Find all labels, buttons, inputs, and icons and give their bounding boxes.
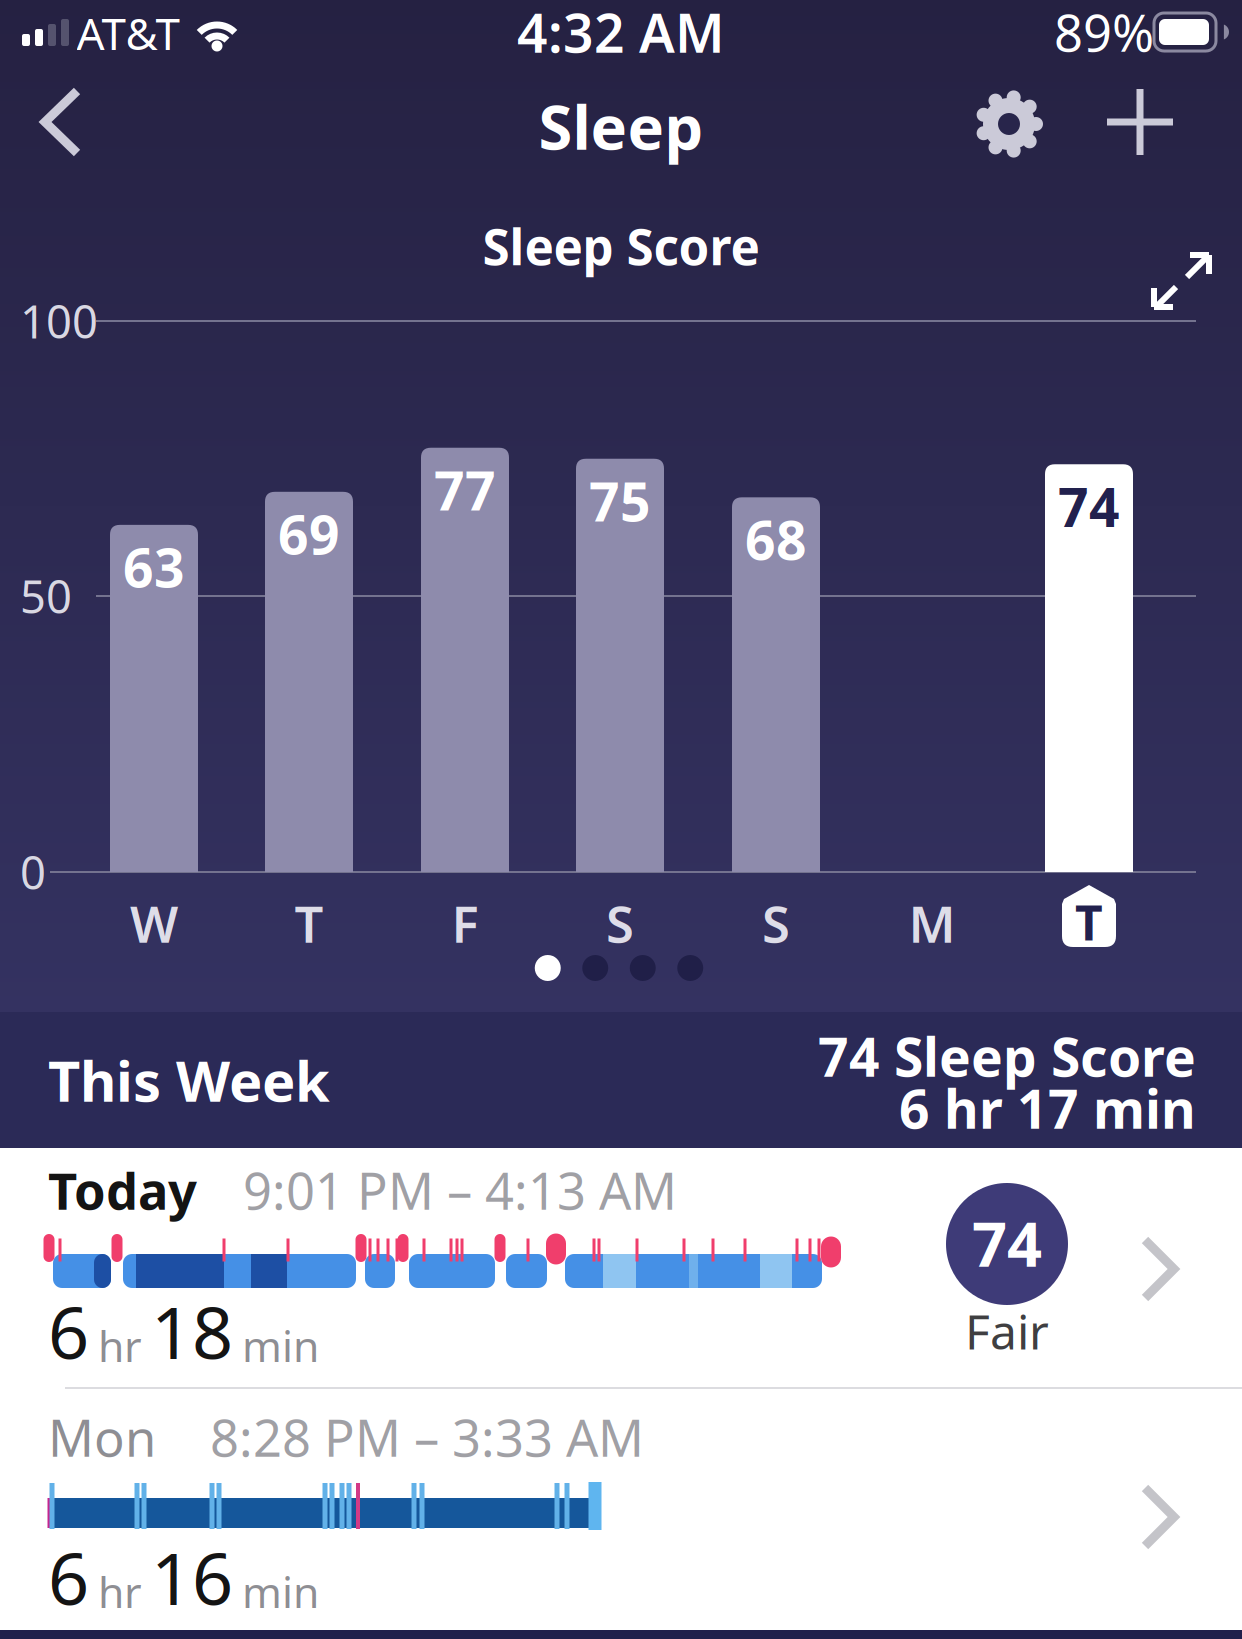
staticText: 63 <box>123 531 185 602</box>
staticText: 68 <box>745 504 807 575</box>
staticText: Mon <box>48 1403 156 1471</box>
staticText: T <box>1075 890 1103 954</box>
staticText: 69 <box>278 498 340 569</box>
staticText: 74 <box>1058 471 1120 542</box>
staticText: W <box>130 889 178 957</box>
staticText: hr <box>98 1317 142 1374</box>
button[interactable] <box>36 82 86 162</box>
staticText: 4:32 AM <box>517 0 725 67</box>
staticText: 6 <box>48 1283 89 1379</box>
staticText: Sleep <box>538 85 703 167</box>
staticText: This Week <box>48 1043 330 1117</box>
staticText: 0 <box>20 842 46 902</box>
staticText: Today <box>48 1156 197 1224</box>
staticText: 74 Sleep Score <box>818 1021 1196 1091</box>
staticText: M <box>908 889 955 957</box>
staticText: S <box>762 889 790 957</box>
staticText: 18 <box>151 1283 233 1379</box>
staticText: S <box>606 889 634 957</box>
staticText: Sleep Score <box>482 213 759 279</box>
staticText: 16 <box>151 1529 233 1625</box>
staticText: 50 <box>20 566 72 626</box>
staticText: 77 <box>434 454 496 525</box>
staticText: 75 <box>589 465 651 536</box>
staticText: 9:01 PM – 4:13 AM <box>243 1156 677 1224</box>
staticText: min <box>242 1317 319 1374</box>
staticText: min <box>242 1563 319 1620</box>
button[interactable] <box>1100 82 1180 162</box>
staticText: 74 <box>972 1202 1042 1284</box>
staticText: 6 <box>48 1529 89 1625</box>
staticText: F <box>451 889 478 957</box>
button[interactable] <box>535 955 703 981</box>
button[interactable] <box>969 84 1049 164</box>
button[interactable]: Mon <box>0 1389 1242 1630</box>
button[interactable] <box>1151 251 1213 311</box>
staticText: AT&T <box>76 4 179 62</box>
staticText: 100 <box>20 291 98 351</box>
staticText: T <box>294 889 323 957</box>
button[interactable]: Today <box>0 1148 1242 1389</box>
staticText: 89% <box>1054 0 1154 66</box>
staticText: Fair <box>965 1299 1049 1363</box>
staticText: hr <box>98 1563 142 1620</box>
staticText: 6 hr 17 min <box>899 1073 1196 1143</box>
staticText: 8:28 PM – 3:33 AM <box>210 1403 644 1471</box>
